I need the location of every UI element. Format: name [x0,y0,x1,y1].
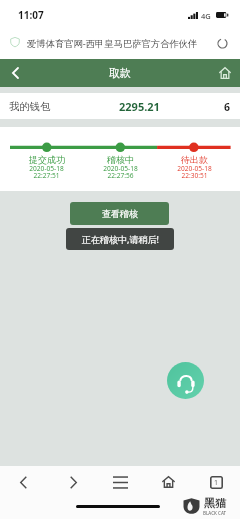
staticText: 6 [224,100,231,114]
staticText: 爱博体育官网-西甲皇马巴萨官方合作伙伴 [27,37,198,50]
button[interactable]: Home [212,59,238,87]
staticText: 22:30:51 [181,171,208,180]
staticText: 黑猫 [204,496,226,510]
staticText: 22:27:56 [107,171,134,180]
staticText: BLACK CAT [203,510,227,516]
button[interactable]: Customer service [167,362,204,399]
staticText: 正在稽核中,请稍后! [82,233,159,245]
staticText: 我的钱包 [9,100,51,113]
staticText: 4G [201,11,211,21]
button[interactable]: Forward [61,470,85,494]
button[interactable]: Back [2,59,28,87]
other: Reload [217,38,228,49]
staticText: 提交成功 [29,154,65,165]
staticText: 2020-05-18 [29,164,64,173]
button[interactable]: Home [156,470,180,494]
staticText: 待出款 [181,154,208,165]
staticText: 稽核中 [107,154,134,165]
staticText: 1 [214,478,219,488]
staticText: 2295.21 [119,99,160,114]
staticText: 2020-05-18 [103,164,138,173]
button[interactable]: Menu [108,470,132,494]
staticText: 查看稽核 [102,208,138,219]
button[interactable]: Back [11,470,35,494]
staticText: 2020-05-18 [177,164,212,173]
staticText: 11:07 [18,8,44,22]
button[interactable]: Tabs [204,470,228,494]
staticText: 22:27:51 [33,171,60,180]
staticText: 取款 [109,66,131,80]
button[interactable]: 查看稽核 [70,202,169,225]
